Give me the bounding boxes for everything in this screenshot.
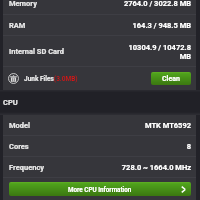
button[interactable]: Junk Files(3.0MB) <box>3 67 196 90</box>
staticText: Frequency <box>9 163 45 172</box>
staticText: 10304.9 / 10472.8 MB <box>128 43 191 61</box>
staticText: Cores <box>9 142 29 151</box>
staticText: CPU <box>3 98 18 107</box>
staticText: 728.0 ~ 1664.0 MHz <box>121 163 191 172</box>
staticText: Model <box>9 121 31 130</box>
staticText: RAM <box>9 21 26 30</box>
button[interactable]: Frequency <box>3 157 196 178</box>
staticText: 2764.0 / 3022.8 MB <box>123 0 191 8</box>
button[interactable]: RAM <box>3 15 196 36</box>
staticText: Junk Files(3.0MB) <box>24 75 78 83</box>
staticText: 8 <box>186 142 191 151</box>
button[interactable]: Clean <box>151 72 191 85</box>
staticText: MTK MT6592 <box>144 121 191 130</box>
staticText: 164.3 / 948.5 MB <box>132 21 191 30</box>
button[interactable]: Memory <box>3 0 196 15</box>
staticText: Internal SD Card <box>9 47 64 56</box>
button[interactable]: Model <box>3 115 196 136</box>
button[interactable]: Cores <box>3 136 196 157</box>
staticText: Clean <box>162 75 180 83</box>
staticText: Memory <box>9 0 37 8</box>
staticText: More CPU Information <box>68 186 132 193</box>
button[interactable]: More CPU Information <box>9 182 191 196</box>
button[interactable]: Internal SD Card <box>3 36 196 67</box>
